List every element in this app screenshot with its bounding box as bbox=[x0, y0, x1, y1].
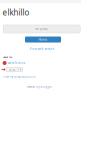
staticText: View my complete profile bbox=[3, 75, 35, 78]
button[interactable]: Home bbox=[25, 36, 61, 42]
button[interactable]: View web version bbox=[29, 46, 55, 51]
staticText: elkhillo bbox=[2, 7, 29, 18]
button[interactable]: Follow bbox=[7, 67, 18, 72]
staticText: No posts. bbox=[35, 27, 48, 31]
staticText: Follow bbox=[9, 68, 16, 71]
staticText: santa fortuna bbox=[8, 61, 25, 65]
staticText: Home bbox=[38, 37, 47, 41]
staticText: About me bbox=[3, 55, 12, 58]
button[interactable]: Followers bbox=[19, 67, 23, 72]
staticText: Powered by bbox=[25, 85, 39, 88]
button[interactable]: View my complete profile bbox=[3, 75, 35, 78]
button[interactable]: Blogger bbox=[40, 85, 51, 88]
staticText: . bbox=[52, 85, 53, 88]
staticText: Blogger bbox=[40, 85, 51, 88]
staticText: View web version bbox=[29, 47, 54, 51]
button[interactable]: santa fortuna bbox=[3, 61, 25, 65]
